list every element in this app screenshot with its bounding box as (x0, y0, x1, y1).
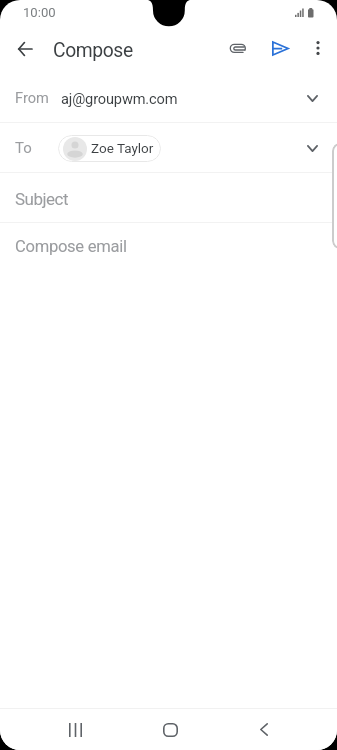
staticText: aj@groupwm.com (61, 90, 178, 107)
button[interactable]: Zoe Taylor (58, 135, 161, 162)
button[interactable]: Attach file (216, 26, 260, 70)
button[interactable]: From (0, 74, 337, 123)
staticText: Subject (15, 189, 69, 209)
button[interactable]: Compose email (0, 223, 337, 272)
button[interactable]: Show Cc and Bcc fields (292, 128, 332, 168)
staticText: To (15, 139, 32, 157)
button[interactable]: Send (258, 26, 302, 70)
button[interactable]: More options (300, 26, 336, 70)
staticText: 10:00 (23, 5, 56, 20)
button[interactable]: Recent apps (28, 709, 123, 750)
staticText: Compose (53, 39, 133, 62)
button[interactable]: Back (217, 709, 311, 750)
button[interactable]: Home (123, 709, 217, 750)
staticText: Compose email (15, 237, 127, 256)
button[interactable]: Subject (0, 174, 337, 223)
staticText: From (15, 89, 49, 106)
button[interactable]: Navigate up (2, 26, 48, 72)
button[interactable]: Show sender options (292, 78, 332, 118)
button[interactable]: To (0, 124, 337, 173)
staticText: Zoe Taylor (91, 140, 154, 156)
